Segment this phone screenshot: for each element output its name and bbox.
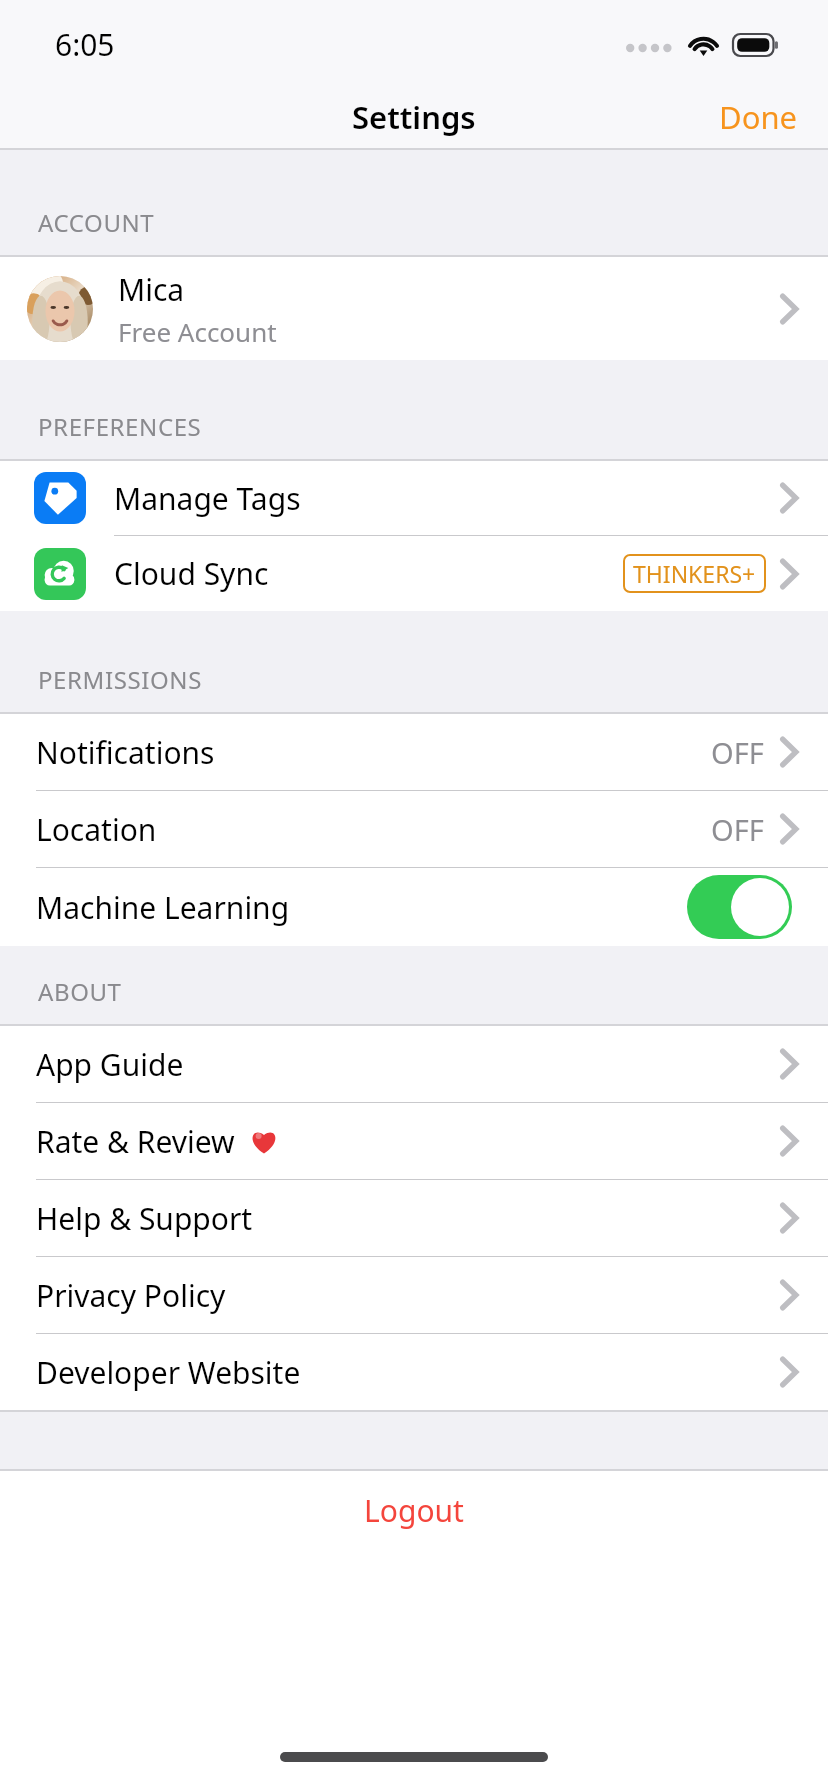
button[interactable]: Logout <box>0 1471 828 1549</box>
staticText: ABOUT <box>38 975 122 1008</box>
button[interactable]: Cloud Sync <box>0 536 828 611</box>
staticText: Rate & Review <box>36 1121 235 1162</box>
staticText: Privacy Policy <box>36 1275 226 1316</box>
button[interactable]: Privacy Policy <box>0 1257 828 1333</box>
staticText: Machine Learning <box>36 887 290 928</box>
staticText: Help & Support <box>36 1198 253 1239</box>
button[interactable]: Done <box>689 88 828 146</box>
staticText: THINKERS+ <box>633 558 756 589</box>
staticText: Cloud Sync <box>114 553 269 594</box>
button[interactable]: Rate & Review <box>0 1103 828 1179</box>
other: Machine Learning toggle, on <box>687 875 792 939</box>
staticText: PERMISSIONS <box>38 663 202 696</box>
staticText: Manage Tags <box>114 478 301 519</box>
staticText: Free Account <box>118 314 277 349</box>
staticText: Notifications <box>36 732 215 773</box>
staticText: Location <box>36 809 157 850</box>
staticText: PREFERENCES <box>38 410 202 443</box>
button[interactable]: Mica <box>0 257 828 360</box>
staticText: App Guide <box>36 1044 184 1085</box>
staticText: Developer Website <box>36 1352 301 1393</box>
button[interactable]: Help & Support <box>0 1180 828 1256</box>
staticText: Logout <box>364 1490 464 1531</box>
staticText: ACCOUNT <box>38 206 155 239</box>
staticText: Settings <box>352 96 476 138</box>
button[interactable]: Notifications <box>0 714 828 790</box>
button[interactable]: Developer Website <box>0 1334 828 1410</box>
staticText: Done <box>719 96 798 138</box>
button[interactable]: App Guide <box>0 1026 828 1102</box>
button[interactable]: Machine Learning <box>0 868 828 946</box>
staticText: OFF <box>711 810 764 849</box>
staticText: Mica <box>118 269 185 310</box>
staticText: OFF <box>711 733 764 772</box>
button[interactable]: Location <box>0 791 828 867</box>
staticText: 6:05 <box>55 24 115 65</box>
button[interactable]: Manage Tags <box>0 461 828 535</box>
